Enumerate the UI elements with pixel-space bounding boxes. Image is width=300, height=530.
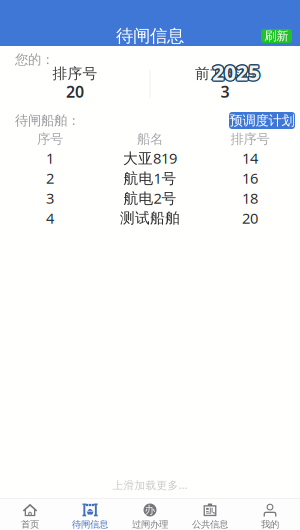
staticText: 2025: [212, 59, 260, 88]
staticText: 航电1号: [123, 168, 176, 188]
staticText: 您的：: [15, 51, 54, 68]
button[interactable]: 公共信息: [180, 498, 240, 530]
staticText: 预调度计划: [229, 112, 294, 129]
staticText: 待闸信息: [72, 519, 108, 530]
button[interactable]: 我的: [240, 498, 300, 530]
button[interactable]: 办: [120, 498, 180, 530]
staticText: 2025: [212, 57, 260, 85]
staticText: 2: [46, 168, 54, 188]
staticText: 16: [242, 168, 258, 188]
staticText: 办: [144, 503, 155, 516]
staticText: 3: [46, 188, 54, 208]
staticText: 大亚819: [123, 148, 177, 168]
staticText: 过闸办理: [132, 519, 168, 530]
staticText: 18: [242, 188, 258, 208]
staticText: 3: [220, 81, 229, 102]
staticText: 排序号: [230, 131, 269, 147]
staticText: 待闸信息: [116, 25, 184, 47]
button[interactable]: 预调度计划: [229, 112, 295, 129]
button[interactable]: 首页: [0, 498, 60, 530]
button[interactable]: 待闸信息: [60, 498, 120, 530]
staticText: 上滑加载更多...: [112, 478, 187, 492]
staticText: 公共信息: [192, 519, 228, 530]
staticText: 2025: [213, 58, 261, 86]
staticText: 我的: [261, 519, 279, 530]
staticText: 序号: [37, 131, 63, 147]
staticText: 20: [242, 208, 258, 228]
staticText: 2025: [213, 59, 261, 87]
button[interactable]: 刷新: [261, 29, 292, 43]
staticText: 14: [242, 148, 258, 168]
staticText: 待闸船舶：: [15, 112, 80, 129]
staticText: 1: [46, 148, 54, 168]
staticText: 刷新: [264, 29, 288, 43]
staticText: 2025: [213, 57, 261, 85]
staticText: 2025: [212, 58, 260, 86]
staticText: 4: [46, 208, 54, 228]
staticText: 2025: [211, 59, 259, 87]
staticText: 20: [66, 81, 84, 102]
staticText: 首页: [21, 519, 39, 530]
staticText: 2025: [211, 57, 259, 85]
staticText: 排序号: [52, 64, 97, 82]
staticText: 前方船舶: [195, 64, 255, 82]
staticText: 航电2号: [123, 188, 176, 208]
staticText: 船名: [137, 131, 163, 147]
staticText: 测试船舶: [120, 209, 180, 227]
staticText: 2025: [211, 58, 259, 86]
